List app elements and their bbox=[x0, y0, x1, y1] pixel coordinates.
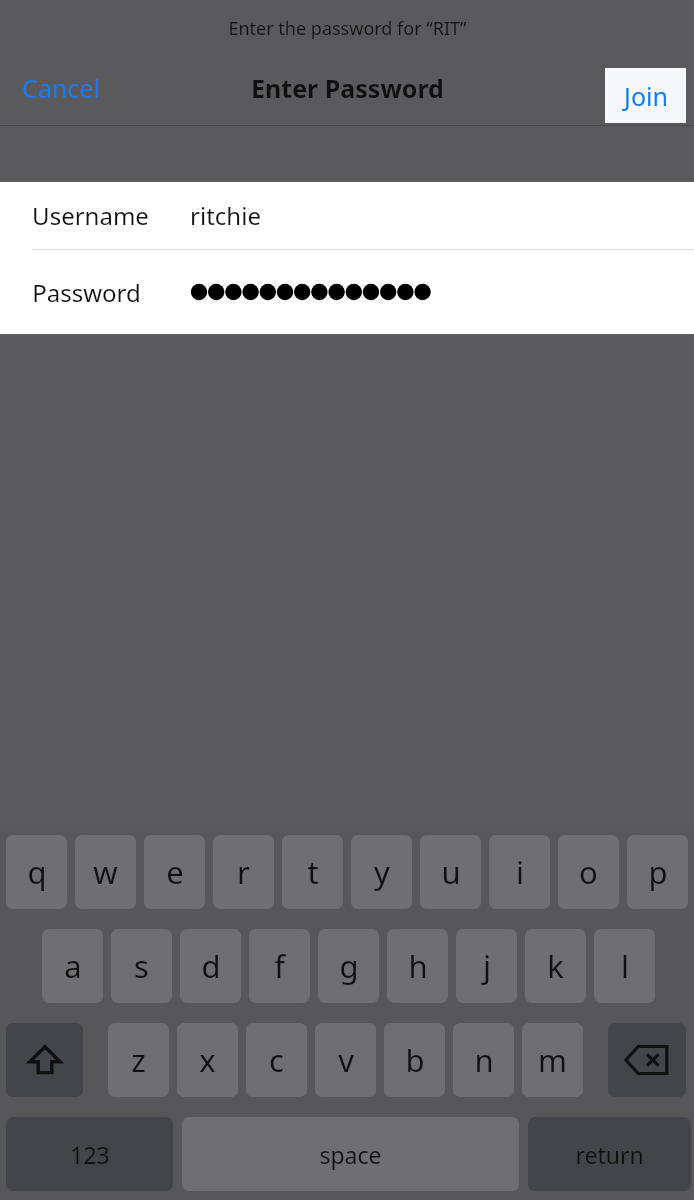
button[interactable]: Cancel bbox=[10, 61, 112, 115]
staticText: h bbox=[408, 945, 428, 987]
staticText: o bbox=[579, 851, 598, 893]
staticText: k bbox=[547, 945, 564, 987]
staticText: g bbox=[339, 945, 359, 987]
staticText: a bbox=[64, 945, 82, 987]
button[interactable]: a bbox=[42, 929, 103, 1003]
staticText: t bbox=[307, 851, 319, 893]
button[interactable]: n bbox=[453, 1023, 514, 1097]
staticText: s bbox=[134, 945, 149, 987]
button[interactable]: w bbox=[75, 835, 136, 909]
staticText: p bbox=[648, 851, 668, 893]
staticText: Password bbox=[32, 276, 141, 309]
button[interactable]: s bbox=[111, 929, 172, 1003]
staticText: r bbox=[237, 851, 250, 893]
staticText: e bbox=[166, 851, 184, 893]
staticText: q bbox=[27, 851, 47, 893]
button[interactable]: l bbox=[594, 929, 655, 1003]
staticText: 123 bbox=[70, 1139, 110, 1170]
staticText: Cancel bbox=[22, 71, 100, 105]
staticText: n bbox=[474, 1039, 494, 1081]
button[interactable]: k bbox=[525, 929, 586, 1003]
button[interactable]: Backspace bbox=[608, 1023, 686, 1097]
staticText: return bbox=[575, 1139, 644, 1170]
button[interactable]: b bbox=[384, 1023, 445, 1097]
staticText: c bbox=[269, 1039, 284, 1081]
button[interactable]: r bbox=[213, 835, 274, 909]
staticText: x bbox=[199, 1039, 216, 1081]
staticText: b bbox=[405, 1039, 425, 1081]
staticText: space bbox=[319, 1139, 382, 1170]
button[interactable]: p bbox=[627, 835, 688, 909]
button[interactable]: Join bbox=[605, 68, 686, 123]
button[interactable]: Password bbox=[0, 250, 694, 334]
button[interactable]: m bbox=[522, 1023, 583, 1097]
button[interactable]: h bbox=[387, 929, 448, 1003]
staticText: w bbox=[93, 851, 118, 893]
staticText: v bbox=[338, 1039, 354, 1081]
button[interactable]: e bbox=[144, 835, 205, 909]
button[interactable]: f bbox=[249, 929, 310, 1003]
staticText: Enter Password bbox=[251, 71, 444, 105]
button[interactable]: g bbox=[318, 929, 379, 1003]
staticText: Enter the password for “RIT” bbox=[228, 16, 467, 41]
staticText: Join bbox=[624, 79, 668, 113]
button[interactable]: Username bbox=[0, 182, 694, 249]
staticText: y bbox=[374, 851, 390, 893]
button[interactable]: x bbox=[177, 1023, 238, 1097]
button[interactable]: y bbox=[351, 835, 412, 909]
button[interactable]: i bbox=[489, 835, 550, 909]
button[interactable]: j bbox=[456, 929, 517, 1003]
staticText: u bbox=[441, 851, 461, 893]
staticText: ritchie bbox=[190, 199, 261, 232]
button[interactable]: v bbox=[315, 1023, 376, 1097]
button[interactable]: Shift bbox=[6, 1023, 83, 1097]
staticText: Username bbox=[32, 199, 149, 232]
button[interactable]: o bbox=[558, 835, 619, 909]
staticText: f bbox=[274, 945, 285, 987]
button[interactable]: t bbox=[282, 835, 343, 909]
button[interactable]: space bbox=[182, 1117, 519, 1191]
button[interactable]: c bbox=[246, 1023, 307, 1097]
staticText: l bbox=[621, 945, 629, 987]
button[interactable]: d bbox=[180, 929, 241, 1003]
staticText: z bbox=[131, 1039, 146, 1081]
staticText: j bbox=[483, 945, 491, 987]
button[interactable]: z bbox=[108, 1023, 169, 1097]
staticText: i bbox=[516, 851, 524, 893]
button[interactable]: return bbox=[528, 1117, 691, 1191]
button[interactable]: q bbox=[6, 835, 67, 909]
button[interactable]: 123 bbox=[6, 1117, 173, 1191]
staticText: d bbox=[201, 945, 221, 987]
staticText: m bbox=[538, 1039, 567, 1081]
button[interactable]: u bbox=[420, 835, 481, 909]
